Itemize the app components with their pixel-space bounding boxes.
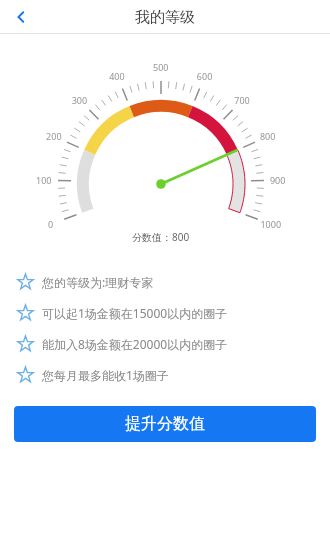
staticText: 提升分数值 (125, 414, 205, 434)
staticText: 您每月最多能收1场圈子 (42, 367, 169, 383)
staticText: 您的等级为:理财专家 (42, 274, 154, 290)
button[interactable]: 提升分数值 (14, 406, 316, 442)
button[interactable]: 您每月最多能收1场圈子 (0, 359, 330, 390)
staticText: 可以起1场金额在15000以内的圈子 (42, 305, 228, 321)
button[interactable]: 能加入8场金额在20000以内的圈子 (0, 328, 330, 359)
button[interactable]: 可以起1场金额在15000以内的圈子 (0, 297, 330, 328)
staticText: 能加入8场金额在20000以内的圈子 (42, 336, 228, 352)
staticText: 我的等级 (135, 8, 195, 27)
button[interactable]: Back (0, 0, 42, 34)
button[interactable]: 您的等级为:理财专家 (0, 266, 330, 297)
